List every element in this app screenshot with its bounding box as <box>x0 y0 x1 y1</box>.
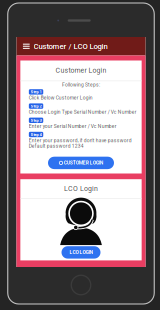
staticText: CUSTOMER LOGIN <box>64 160 103 166</box>
staticText: Step 4 <box>31 132 42 137</box>
staticText: Following Steps: <box>62 82 100 88</box>
staticText: Customer Login <box>55 66 106 74</box>
staticText: Customer / LCO Login <box>33 42 107 51</box>
button[interactable]: Open menu <box>22 37 30 55</box>
staticText: Enter your password, if don't have passw… <box>29 138 132 143</box>
staticText: LCO LOGIN <box>69 249 92 255</box>
button[interactable]: LCO LOGIN <box>61 246 100 259</box>
button[interactable]: CUSTOMER LOGIN <box>48 157 114 169</box>
staticText: Enter your Serial Number / Vc Number <box>29 123 117 129</box>
staticText: Step 1 <box>31 89 42 94</box>
staticText: LCO Login <box>64 185 98 193</box>
staticText: Click Below Customer Login <box>29 95 93 101</box>
staticText: Choose Login Type Serial Number / Vc Num… <box>29 109 137 115</box>
staticText: Default password 1234 <box>29 143 84 149</box>
staticText: Step 2 <box>31 104 42 108</box>
staticText: Step 3 <box>31 118 42 123</box>
